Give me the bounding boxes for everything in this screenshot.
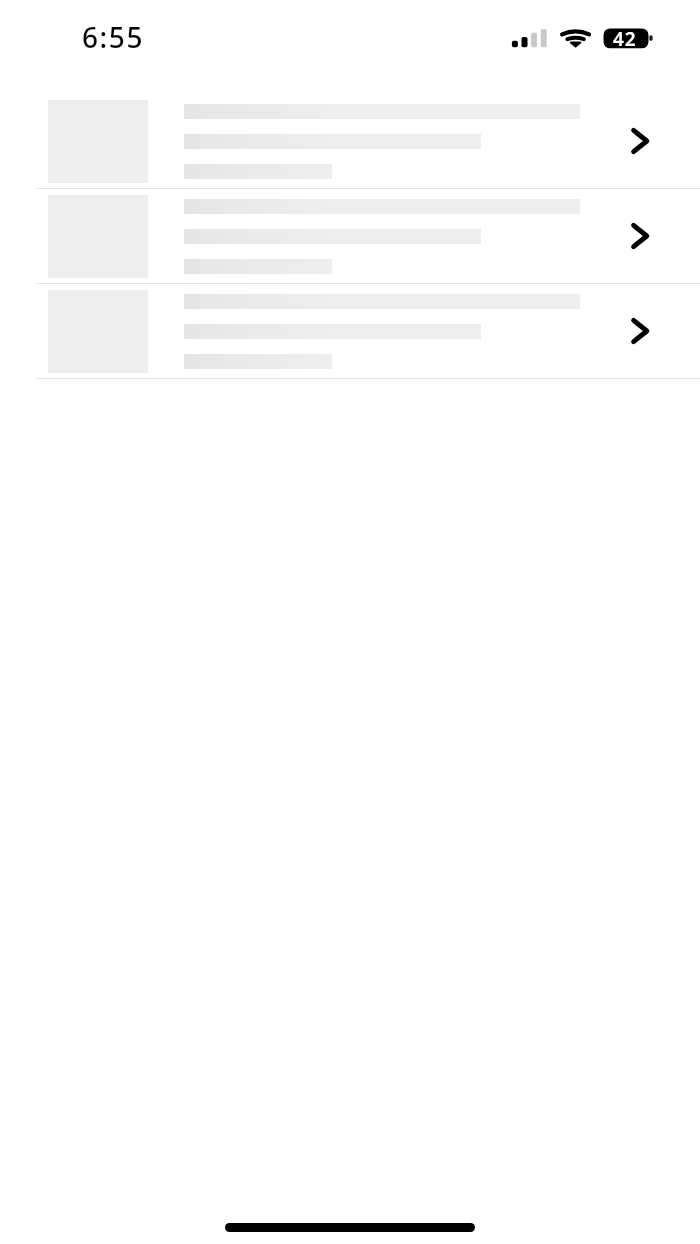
other: Open item: [630, 126, 664, 156]
button[interactable]: Open item: [0, 284, 700, 378]
other: Open item: [630, 316, 664, 346]
other: Cellular signal: [511, 28, 548, 49]
button[interactable]: Open item: [0, 94, 700, 188]
staticText: 42: [613, 26, 637, 47]
other: Open item: [630, 221, 664, 251]
button[interactable]: Open item: [0, 189, 700, 283]
staticText: 6:55: [82, 18, 145, 56]
other: Battery 42 percent: [603, 28, 654, 49]
other: Wi-Fi connected: [558, 26, 594, 50]
